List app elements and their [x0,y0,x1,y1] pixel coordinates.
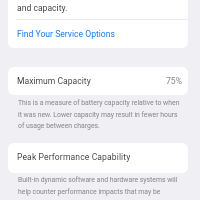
button[interactable]: Peak Performance Capability [8,143,188,173]
button[interactable]: Find Your Service Options [8,20,188,48]
staticText: Built-in dynamic software and hardware s… [18,176,183,195]
staticText: Maximum Capacity [17,76,91,86]
staticText: This is a measure of battery capacity re… [18,99,183,129]
staticText: Find Your Service Options [17,29,115,39]
staticText: 75% [166,76,182,86]
staticText: Peak Performance Capability [17,152,131,162]
button[interactable]: and capacity. [8,0,188,19]
staticText: and capacity. [17,3,68,13]
button[interactable]: Maximum Capacity [8,67,188,95]
